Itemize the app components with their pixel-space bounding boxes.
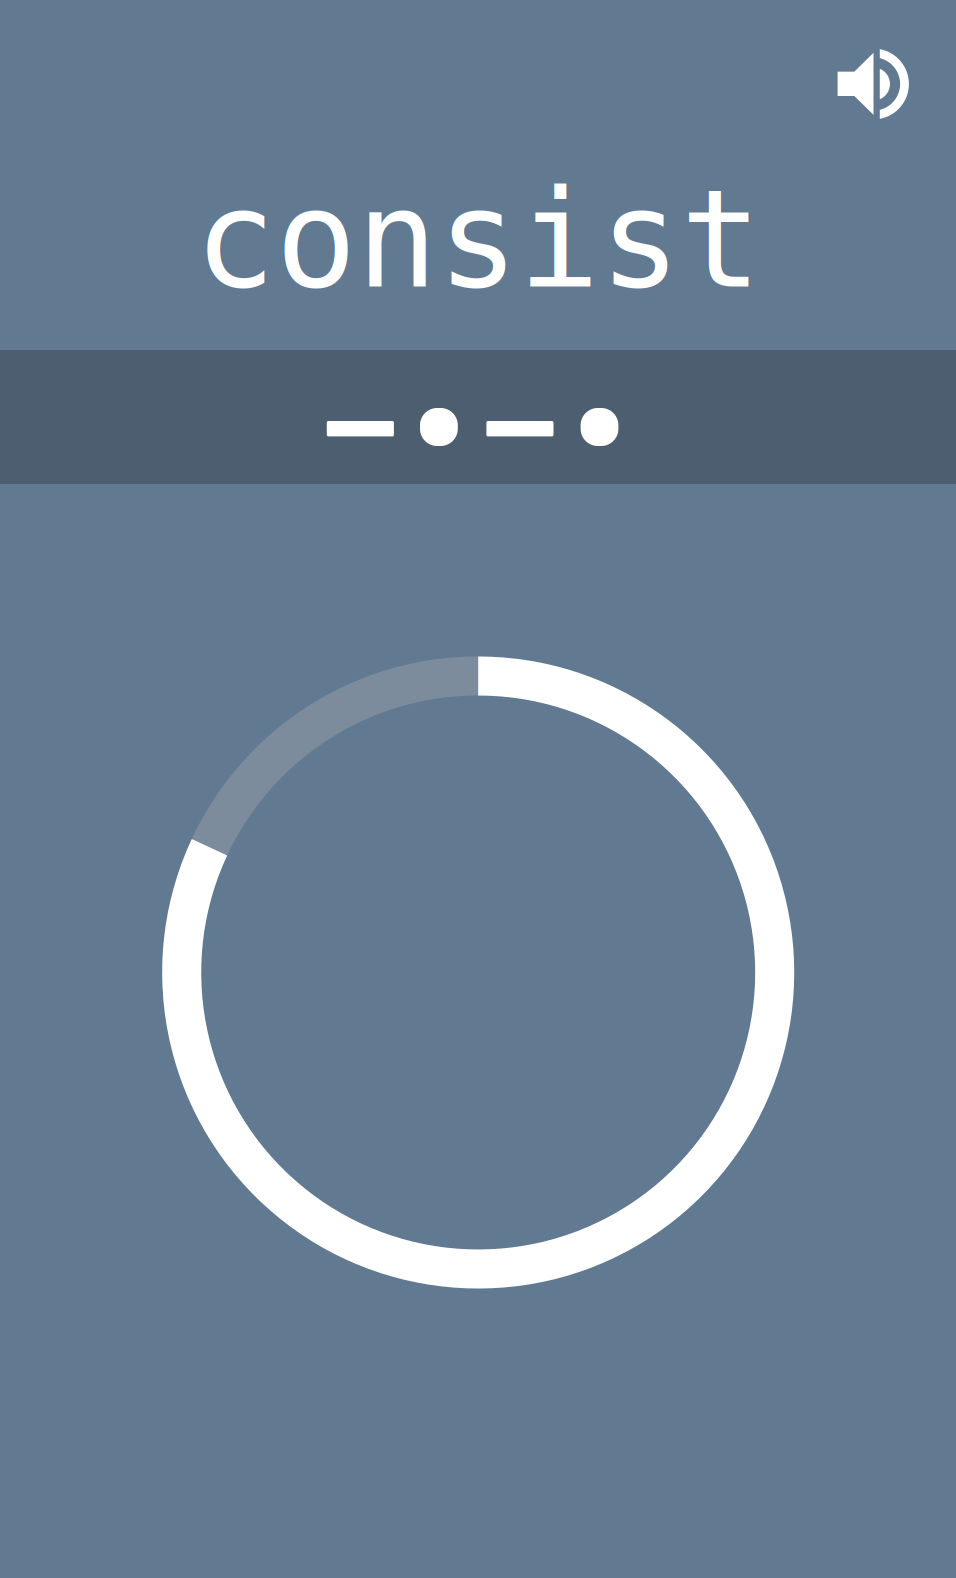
staticText: consist — [194, 164, 761, 316]
button[interactable]: Play pronunciation — [812, 22, 936, 146]
